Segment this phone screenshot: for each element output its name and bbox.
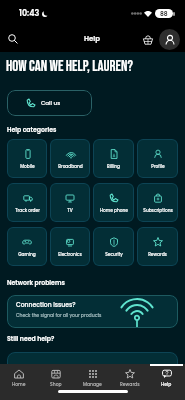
staticText: Connection issues? — [16, 301, 76, 310]
staticText: Profile — [151, 163, 165, 169]
staticText: Shop — [50, 381, 62, 387]
button[interactable]: Connection issues? — [7, 295, 178, 328]
staticText: Subscriptions — [143, 207, 173, 213]
staticText: TV — [67, 207, 73, 213]
staticText: Rewards — [120, 381, 140, 387]
staticText: Network problems — [7, 278, 65, 287]
button[interactable]: Home phone — [93, 183, 134, 222]
staticText: Still need help? — [7, 334, 55, 343]
staticText: Billing — [107, 163, 120, 169]
button[interactable]: Profile — [137, 139, 178, 178]
staticText: Mobile — [20, 163, 35, 169]
button[interactable]: Rewards — [111, 364, 148, 400]
staticText: 88 — [160, 10, 168, 18]
button[interactable]: Search — [4, 30, 22, 48]
staticText: Broadband — [58, 163, 83, 169]
button[interactable]: Call us — [7, 90, 92, 116]
button[interactable]: Subscriptions — [137, 183, 178, 222]
staticText: Electronics — [58, 251, 82, 257]
button[interactable]: Mobile — [7, 139, 47, 178]
staticText: HOW CAN WE HELP, LAUREN? — [6, 57, 133, 75]
staticText: Help — [84, 34, 101, 44]
staticText: Gaming — [18, 251, 36, 257]
button[interactable]: Shop — [37, 364, 74, 400]
button[interactable]: Basket — [139, 31, 157, 49]
button[interactable]: Account — [159, 29, 180, 50]
button[interactable]: Security — [93, 227, 134, 266]
button[interactable]: Gaming — [7, 227, 47, 266]
staticText: Home phone — [100, 207, 128, 213]
button[interactable] — [7, 352, 178, 392]
button[interactable]: Rewards — [137, 227, 178, 266]
button[interactable]: TV — [50, 183, 90, 222]
staticText: Call us — [41, 99, 61, 107]
button[interactable]: Home — [0, 364, 37, 400]
button[interactable]: Billing — [93, 139, 134, 178]
staticText: Help — [161, 381, 172, 387]
staticText: Security — [105, 251, 123, 257]
staticText: Help categories — [7, 125, 57, 134]
button[interactable]: Help — [148, 364, 185, 400]
button[interactable]: Electronics — [50, 227, 90, 266]
staticText: 10:43 — [19, 8, 40, 19]
button[interactable]: Broadband — [50, 139, 90, 178]
button[interactable]: Manage — [74, 364, 111, 400]
staticText: Track order — [15, 207, 40, 213]
staticText: Rewards — [148, 251, 167, 257]
staticText: Manage — [83, 381, 102, 387]
button[interactable]: Track order — [7, 183, 47, 222]
staticText: Check the signal for all your products — [16, 312, 102, 318]
staticText: Home — [12, 381, 26, 387]
